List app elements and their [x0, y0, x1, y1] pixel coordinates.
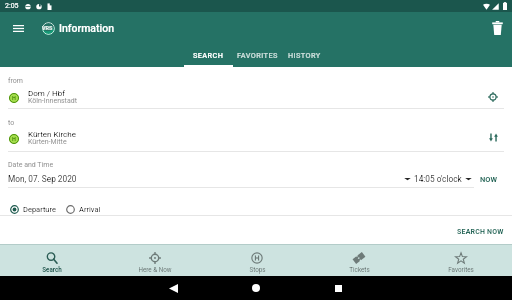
- staticText: H: [12, 136, 16, 142]
- button[interactable]: Home: [234, 276, 278, 300]
- staticText: to: [8, 119, 15, 127]
- button[interactable]: Recent apps: [316, 276, 360, 300]
- button[interactable]: Search: [0, 244, 103, 276]
- staticText: Stops: [249, 266, 266, 273]
- button[interactable]: Stops: [206, 244, 308, 276]
- staticText: SEARCH NOW: [457, 228, 504, 236]
- staticText: Kürten Kirche: [28, 130, 76, 139]
- button[interactable]: H: [0, 129, 512, 149]
- staticText: Search: [42, 266, 62, 273]
- button[interactable]: SEARCH NOW: [447, 224, 512, 240]
- staticText: Information: [59, 22, 114, 34]
- button[interactable]: Here & Now: [103, 244, 206, 276]
- staticText: 2:05: [5, 2, 19, 10]
- button[interactable]: Departure: [10, 205, 56, 214]
- staticText: SEARCH: [193, 51, 224, 60]
- button[interactable]: H: [0, 88, 512, 108]
- staticText: Mon, 07. Sep 2020: [8, 174, 77, 184]
- button[interactable]: Clear input: [482, 12, 512, 44]
- staticText: Kürten-Mitte: [28, 138, 67, 146]
- staticText: VRS: [42, 25, 53, 31]
- staticText: Tickets: [349, 266, 370, 273]
- button[interactable]: Mon, 07. Sep 2020: [8, 174, 77, 184]
- staticText: 14:05 o'clock: [414, 174, 462, 184]
- staticText: Arrival: [79, 205, 101, 214]
- staticText: Departure: [23, 205, 56, 214]
- staticText: Here & Now: [138, 266, 172, 273]
- button[interactable]: NOW: [480, 175, 498, 184]
- button[interactable]: Select time: [404, 174, 472, 184]
- staticText: HISTORY: [288, 51, 321, 60]
- button[interactable]: Swap origin and destination: [485, 129, 501, 145]
- staticText: Köln-Innenstadt: [28, 97, 77, 105]
- staticText: from: [8, 77, 23, 85]
- staticText: NOW: [480, 175, 498, 184]
- button[interactable]: Tickets: [308, 244, 410, 276]
- button[interactable]: Favorites: [410, 244, 512, 276]
- button[interactable]: Back: [151, 276, 195, 300]
- staticText: Date and Time: [8, 161, 54, 169]
- button[interactable]: SEARCH: [184, 44, 232, 67]
- staticText: Dom / Hbf: [28, 89, 66, 98]
- button[interactable]: HISTORY: [280, 44, 328, 67]
- staticText: Favorites: [448, 266, 474, 273]
- staticText: FAVORITES: [237, 51, 278, 60]
- button[interactable]: FAVORITES: [233, 44, 281, 67]
- button[interactable]: Use current location: [485, 89, 501, 105]
- button[interactable]: Arrival: [66, 205, 101, 214]
- staticText: H: [12, 95, 16, 101]
- button[interactable]: Open navigation drawer: [0, 12, 36, 44]
